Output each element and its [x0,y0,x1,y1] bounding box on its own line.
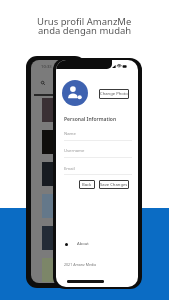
button[interactable]: Change Photo [99,89,129,99]
staticText: Back [82,182,92,188]
staticText: Name [64,131,76,137]
button[interactable]: Save Changes [99,180,129,189]
button[interactable]: Back [79,180,95,189]
staticText: Urus profil AmanzMe [37,15,132,28]
staticText: Save Changes [100,182,128,188]
staticText: anda dengan mudah [38,24,132,37]
staticText: Username [64,148,85,154]
staticText: Personal Information [64,116,117,123]
staticText: About [77,241,89,247]
staticText: Email [64,166,75,172]
staticText: 10:33 [41,64,52,70]
button[interactable]: About [65,239,95,249]
staticText: Change Photo [100,91,128,97]
button[interactable]: Profile photo [62,80,88,106]
staticText: 2021 Amanz Media [64,262,97,267]
